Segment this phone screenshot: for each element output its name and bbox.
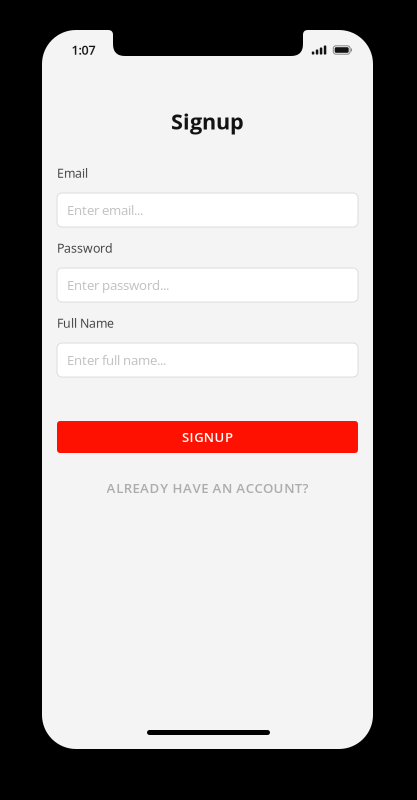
button[interactable]: SIGNUP: [57, 421, 358, 453]
staticText: Enter full name...: [67, 351, 166, 369]
staticText: Full Name: [57, 315, 114, 331]
button[interactable]: Enter password...: [57, 268, 358, 302]
staticText: Enter email...: [67, 201, 143, 219]
button[interactable]: Enter email...: [57, 193, 358, 227]
staticText: Password: [57, 240, 113, 256]
staticText: SIGNUP: [182, 428, 233, 446]
staticText: Signup: [171, 106, 244, 136]
staticText: ALREADY HAVE AN ACCOUNT?: [107, 479, 308, 497]
staticText: Email: [57, 165, 88, 181]
button[interactable]: Enter full name...: [57, 343, 358, 377]
button[interactable]: ALREADY HAVE AN ACCOUNT?: [57, 480, 358, 496]
staticText: 1:07: [71, 41, 95, 59]
staticText: Enter password...: [67, 276, 169, 294]
